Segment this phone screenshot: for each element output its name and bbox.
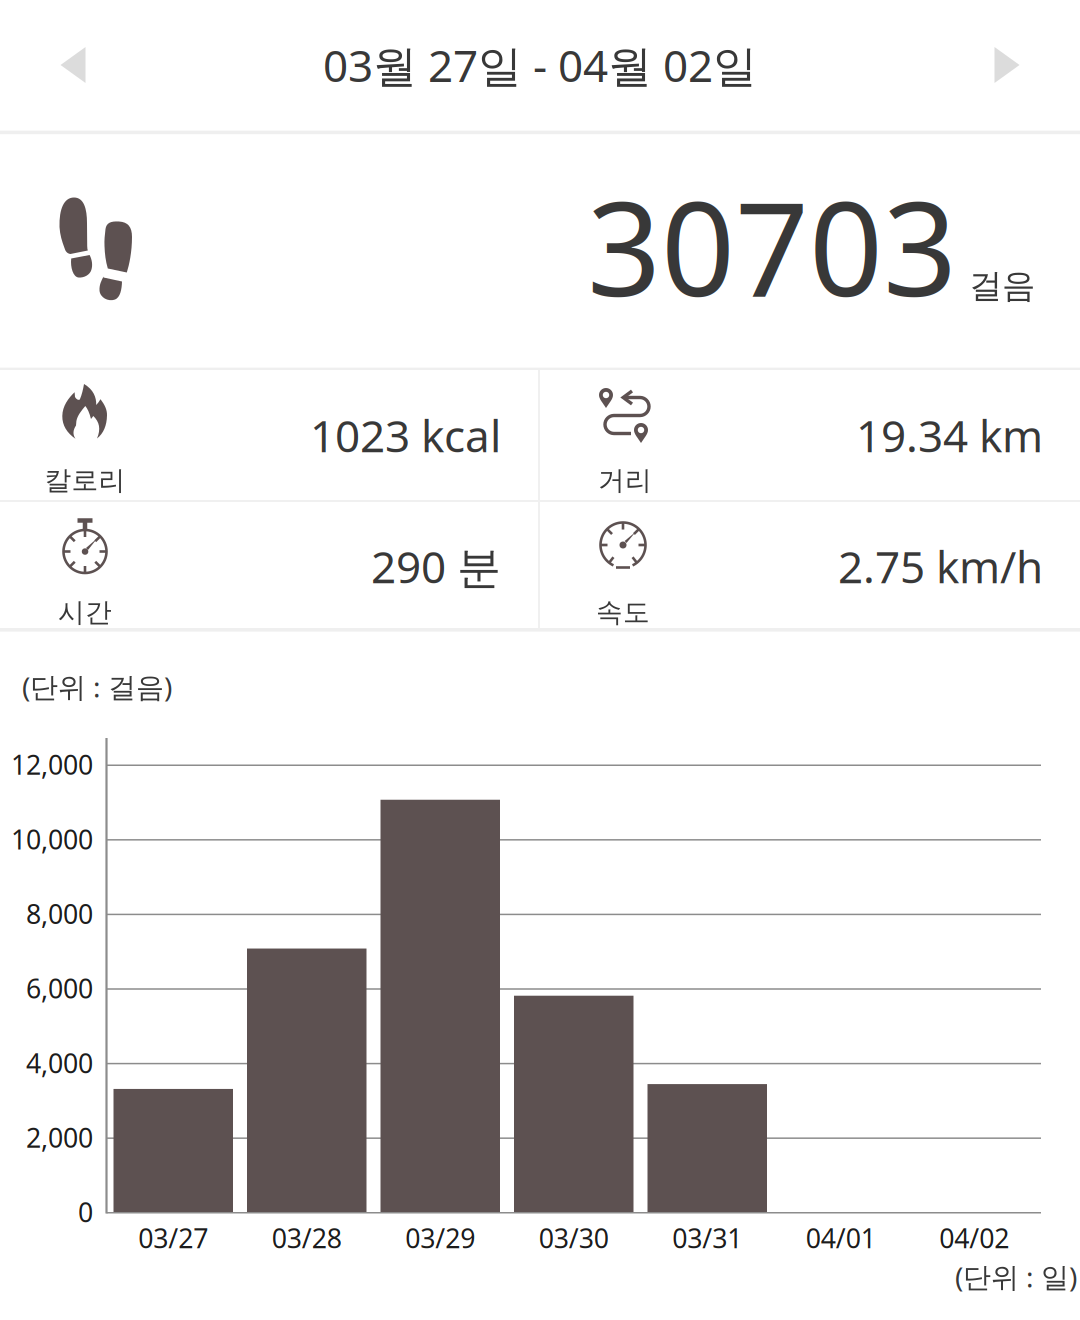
staticText: (단위 : 일) xyxy=(955,1258,1077,1295)
staticText: 12,000 xyxy=(11,747,93,782)
staticText: 10,000 xyxy=(11,821,93,857)
staticText: 03/27 xyxy=(138,1220,208,1256)
staticText: 2.75 km/h xyxy=(838,537,1043,595)
staticText: 03월 27일 - 04월 02일 xyxy=(323,36,757,94)
staticText: 04/01 xyxy=(806,1220,876,1256)
staticText: 30703 xyxy=(587,160,957,332)
staticText: 속도 xyxy=(596,596,650,629)
staticText: 걸음 xyxy=(969,265,1035,306)
staticText: 03/29 xyxy=(405,1220,475,1256)
staticText: 칼로리 xyxy=(44,464,125,497)
staticText: 시간 xyxy=(58,596,112,629)
staticText: 04/02 xyxy=(939,1220,1009,1256)
staticText: (단위 : 걸음) xyxy=(22,668,172,705)
staticText: 03/30 xyxy=(539,1220,609,1256)
staticText: 8,000 xyxy=(26,896,93,931)
staticText: 1023 kcal xyxy=(310,406,501,464)
staticText: 290 분 xyxy=(371,537,501,595)
staticText: 0 xyxy=(78,1194,93,1230)
button[interactable]: Previous week xyxy=(0,0,150,130)
staticText: 03/28 xyxy=(272,1220,342,1256)
staticText: 03/31 xyxy=(672,1220,742,1256)
staticText: 거리 xyxy=(598,464,652,497)
staticText: 4,000 xyxy=(26,1045,93,1080)
staticText: 19.34 km xyxy=(856,406,1043,464)
staticText: 6,000 xyxy=(26,970,93,1006)
staticText: 2,000 xyxy=(26,1120,93,1155)
button[interactable]: Next week xyxy=(930,0,1080,130)
